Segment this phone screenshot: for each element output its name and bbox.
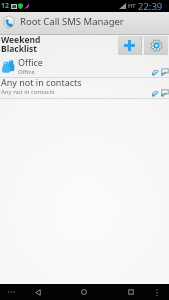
button[interactable]: Recent apps — [120, 284, 142, 300]
button[interactable]: Back — [27, 284, 49, 300]
staticText: Any not in contacts — [1, 76, 82, 88]
staticText: Blacklist — [1, 43, 37, 55]
staticText: Any not in contacts — [1, 88, 55, 96]
staticText: Office — [18, 56, 43, 68]
staticText: 22:39 — [138, 0, 163, 12]
button[interactable]: Office — [0, 57, 169, 78]
button[interactable]: Menu — [146, 284, 168, 300]
button[interactable]: Add new rule — [118, 36, 141, 55]
button[interactable]: More options — [0, 284, 22, 300]
staticText: Weekend — [1, 34, 41, 46]
staticText: Office — [18, 68, 35, 76]
button[interactable]: Settings — [144, 36, 168, 55]
staticText: 12 — [1, 1, 10, 11]
staticText: Root Call SMS Manager — [20, 15, 124, 28]
staticText: нт — [128, 1, 136, 11]
button[interactable]: Home — [73, 284, 95, 300]
button[interactable]: Any not in contacts — [0, 78, 169, 99]
